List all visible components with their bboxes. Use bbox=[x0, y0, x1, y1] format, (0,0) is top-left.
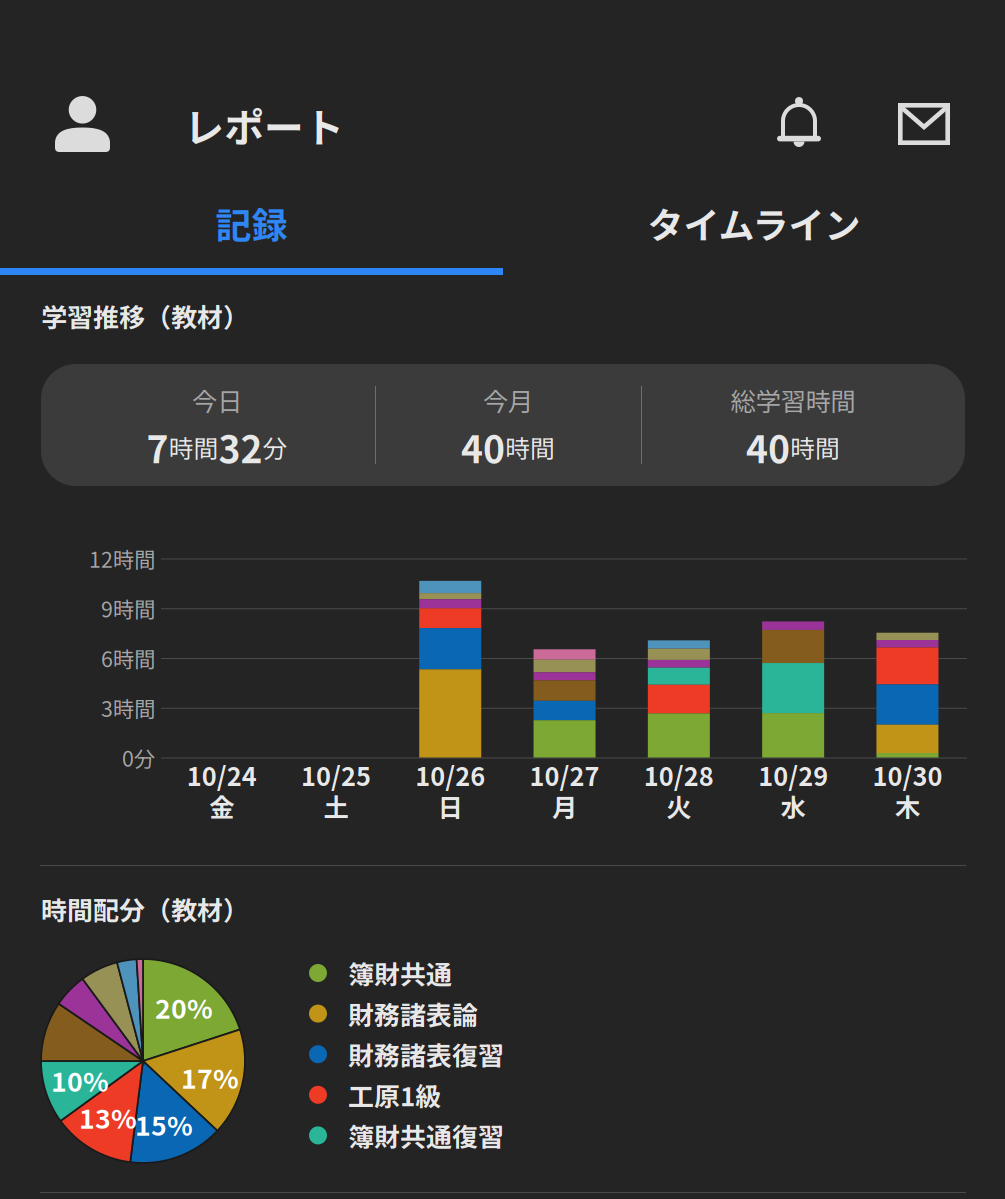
staticText: 10/25 bbox=[301, 757, 371, 793]
staticText: 日 bbox=[438, 788, 463, 824]
button[interactable]: Messages bbox=[884, 84, 964, 164]
staticText: 財務諸表論 bbox=[348, 995, 478, 1032]
staticText: 時間配分（教材） bbox=[41, 890, 249, 928]
staticText: 学習推移（教材） bbox=[41, 297, 249, 335]
staticText: 水 bbox=[781, 788, 806, 824]
staticText: 3時間 bbox=[101, 692, 155, 723]
staticText: 7 bbox=[146, 420, 168, 474]
staticText: 金 bbox=[209, 788, 234, 824]
staticText: 10/29 bbox=[758, 757, 828, 793]
staticText: 20% bbox=[155, 988, 213, 1026]
staticText: 13% bbox=[79, 1098, 137, 1136]
button[interactable]: タイムライン bbox=[503, 193, 1005, 275]
staticText: 簿財共通 bbox=[348, 954, 452, 992]
staticText: 15% bbox=[135, 1105, 193, 1143]
staticText: 10% bbox=[51, 1061, 109, 1099]
staticText: 今日 bbox=[192, 382, 242, 418]
staticText: 6時間 bbox=[101, 643, 155, 673]
staticText: 10/27 bbox=[529, 757, 599, 793]
staticText: 10/28 bbox=[644, 757, 714, 793]
staticText: 40 bbox=[746, 420, 790, 474]
staticText: 時間 bbox=[505, 429, 555, 465]
staticText: 40 bbox=[461, 420, 505, 474]
staticText: 土 bbox=[323, 788, 348, 824]
staticText: 時間 bbox=[790, 429, 840, 465]
staticText: 木 bbox=[895, 788, 920, 824]
staticText: 総学習時間 bbox=[730, 382, 855, 418]
staticText: 火 bbox=[666, 788, 691, 824]
staticText: 10/30 bbox=[872, 757, 942, 793]
staticText: 32 bbox=[218, 420, 262, 474]
staticText: 12時間 bbox=[89, 543, 155, 574]
staticText: 時間 bbox=[168, 429, 218, 465]
staticText: 今月 bbox=[483, 382, 533, 418]
staticText: 9時間 bbox=[101, 593, 155, 624]
staticText: 簿財共通復習 bbox=[348, 1117, 504, 1154]
staticText: 月 bbox=[552, 788, 577, 824]
staticText: 10/26 bbox=[415, 757, 485, 793]
staticText: 記録 bbox=[215, 197, 287, 249]
staticText: 17% bbox=[181, 1058, 239, 1096]
staticText: 0分 bbox=[122, 742, 155, 773]
staticText: 10/24 bbox=[187, 757, 257, 793]
staticText: 財務諸表復習 bbox=[348, 1035, 504, 1073]
button[interactable]: 記録 bbox=[0, 193, 503, 275]
button[interactable]: Notifications bbox=[763, 83, 835, 164]
staticText: 分 bbox=[262, 429, 287, 465]
staticText: レポート bbox=[184, 96, 344, 154]
staticText: タイムライン bbox=[647, 197, 860, 249]
button[interactable]: Profile bbox=[43, 84, 122, 164]
staticText: 工原1級 bbox=[348, 1076, 441, 1114]
